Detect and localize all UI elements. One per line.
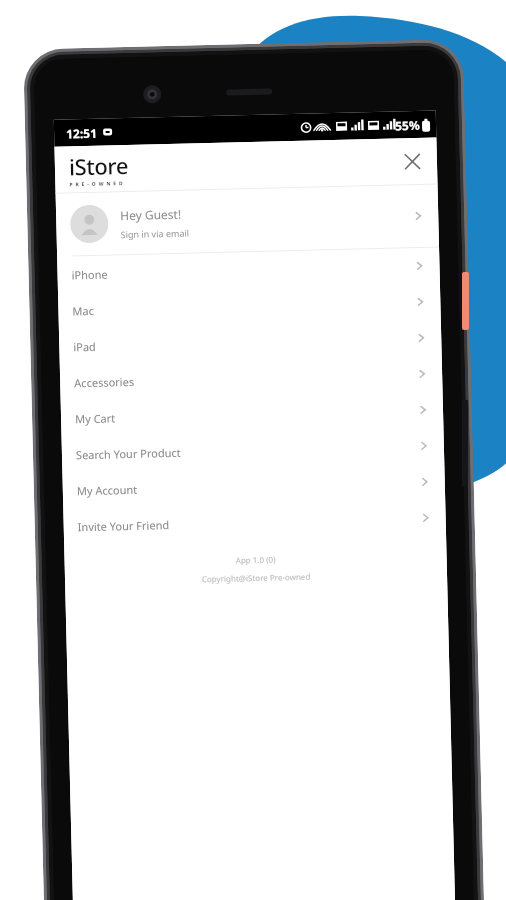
- staticText: Invite Your Friend: [78, 511, 420, 534]
- staticText: Sign in via email: [120, 226, 190, 240]
- button[interactable]: iStore: [69, 150, 129, 188]
- staticText: 12:51: [66, 125, 97, 141]
- staticText: 55%: [395, 117, 420, 133]
- button[interactable]: iPad: [59, 319, 442, 365]
- staticText: Accessories: [74, 367, 416, 390]
- staticText: Copyright@iStore Pre-owned: [65, 567, 447, 588]
- button[interactable]: Search Your Product: [61, 427, 444, 473]
- button[interactable]: Hey Guest!: [56, 184, 439, 256]
- staticText: iStore: [69, 150, 129, 181]
- button[interactable]: Close: [394, 144, 429, 178]
- staticText: App 1.0 (0): [64, 549, 447, 570]
- staticText: iPad: [73, 331, 415, 354]
- staticText: My Account: [77, 475, 419, 498]
- button[interactable]: Invite Your Friend: [63, 499, 446, 545]
- button[interactable]: My Cart: [61, 391, 443, 437]
- staticText: My Cart: [75, 403, 417, 426]
- button[interactable]: Mac: [58, 283, 441, 329]
- staticText: P R E - O W N E D: [69, 180, 124, 188]
- staticText: iPhone: [71, 259, 414, 282]
- button[interactable]: iPhone: [57, 247, 440, 293]
- staticText: Hey Guest!: [120, 206, 181, 223]
- staticText: Search Your Product: [76, 439, 418, 462]
- button[interactable]: Accessories: [60, 355, 443, 401]
- staticText: Mac: [72, 295, 415, 318]
- button[interactable]: My Account: [62, 463, 445, 509]
